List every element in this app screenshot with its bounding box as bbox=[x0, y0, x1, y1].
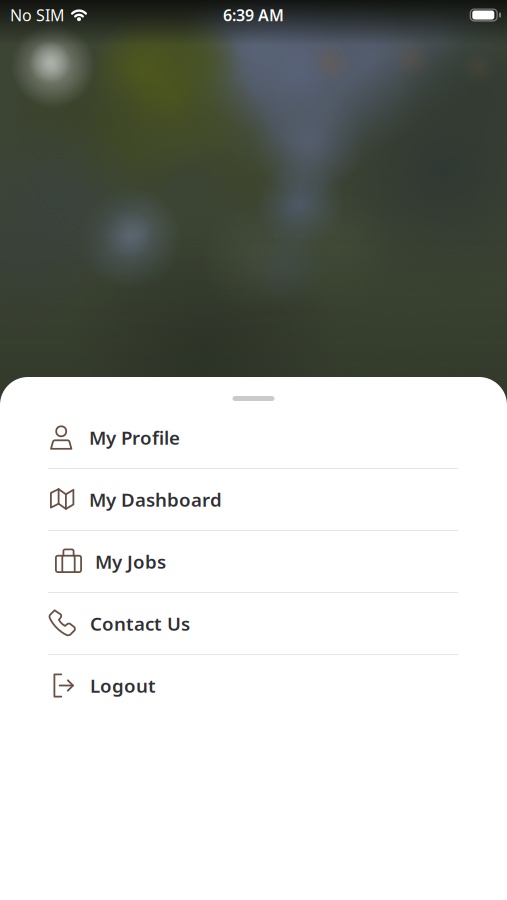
button[interactable]: Contact Us bbox=[0, 593, 507, 655]
staticText: No SIM bbox=[10, 4, 65, 26]
button[interactable]: My Profile bbox=[0, 407, 507, 469]
staticText: Contact Us bbox=[90, 611, 190, 636]
staticText: Logout bbox=[90, 673, 156, 698]
staticText: My Profile bbox=[89, 425, 180, 450]
button[interactable]: Logout bbox=[0, 655, 507, 717]
staticText: 6:39 AM bbox=[223, 4, 284, 26]
button[interactable]: My Jobs bbox=[0, 531, 507, 593]
button[interactable]: My Dashboard bbox=[0, 469, 507, 531]
staticText: My Jobs bbox=[95, 549, 166, 574]
staticText: My Dashboard bbox=[89, 487, 222, 512]
